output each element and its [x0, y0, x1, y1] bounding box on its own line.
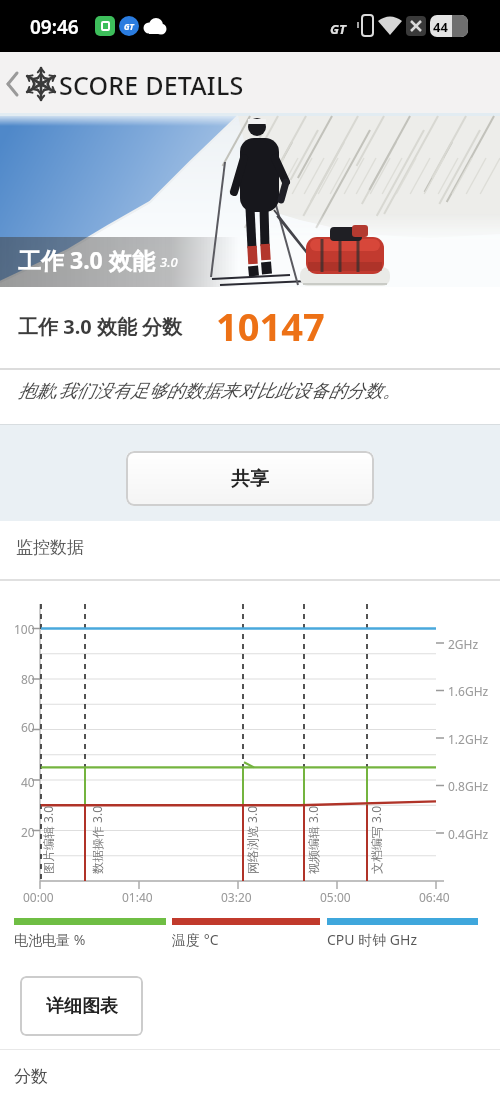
- staticText: 06:40: [419, 889, 450, 905]
- staticText: 共享: [231, 467, 269, 491]
- staticText: SCORE DETAILS: [59, 68, 244, 102]
- staticText: 09:46: [30, 14, 79, 40]
- staticText: 图片编辑 3.0: [40, 805, 56, 874]
- staticText: 60: [21, 719, 35, 735]
- staticText: 1.2GHz: [448, 731, 489, 747]
- staticText: 电池电量 %: [14, 930, 86, 949]
- staticText: GT: [330, 20, 346, 38]
- staticText: 2GHz: [448, 636, 479, 652]
- staticText: 视频编辑 3.0: [305, 805, 321, 874]
- staticText: 工作 3.0 效能: [18, 244, 155, 275]
- staticText: CPU 时钟 GHz: [327, 930, 417, 949]
- staticText: 3.0: [160, 253, 178, 271]
- staticText: 0.4GHz: [448, 826, 489, 842]
- staticText: 44: [433, 18, 448, 36]
- staticText: 监控数据: [16, 537, 84, 558]
- staticText: 01:40: [122, 889, 153, 905]
- staticText: 00:00: [23, 889, 54, 905]
- staticText: 工作 3.0 效能 分数: [18, 313, 183, 340]
- staticText: 05:00: [320, 889, 351, 905]
- staticText: 数据操作 3.0: [89, 805, 105, 874]
- staticText: 抱歉,我们没有足够的数据来对比此设备的分数。: [18, 378, 401, 403]
- staticText: 文档编写 3.0: [368, 805, 384, 874]
- staticText: 40: [21, 774, 35, 790]
- staticText: 20: [21, 824, 35, 840]
- staticText: 分数: [14, 1066, 48, 1087]
- staticText: 详细图表: [46, 995, 118, 1018]
- staticText: 03:20: [221, 889, 252, 905]
- staticText: 网络浏览 3.0: [244, 805, 260, 874]
- button[interactable]: 详细图表: [20, 976, 143, 1036]
- staticText: 10147: [216, 300, 325, 352]
- button[interactable]: [2, 64, 24, 104]
- staticText: 温度 °C: [172, 930, 219, 949]
- button[interactable]: 共享: [126, 451, 374, 506]
- staticText: 80: [21, 671, 35, 687]
- staticText: 0.8GHz: [448, 778, 489, 794]
- staticText: 1.6GHz: [448, 683, 489, 699]
- staticText: GT: [124, 21, 134, 32]
- staticText: 100: [14, 621, 35, 637]
